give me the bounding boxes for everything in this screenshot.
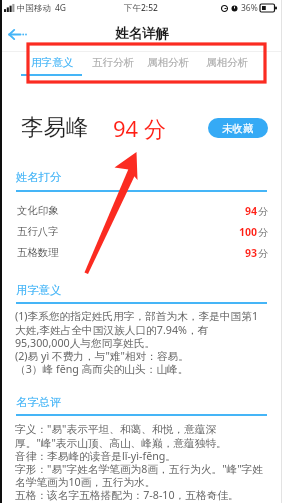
staticText: 4G xyxy=(55,2,67,14)
staticText: 五行八字 xyxy=(17,225,59,238)
staticText: 姓名详解 xyxy=(115,25,169,42)
button[interactable]: 属相分析 xyxy=(142,54,195,70)
staticText: 字义："易"表示平坦、和蔼、和悦，意蕴深 厚。"峰"表示山顶、高山、峰巅，意蕴独… xyxy=(15,422,263,502)
button[interactable]: 用字意义 xyxy=(26,54,79,70)
staticText: 36% xyxy=(241,2,258,14)
staticText: 未收藏 xyxy=(222,122,254,135)
staticText: 下午2:52 xyxy=(124,2,158,14)
staticText: 100 xyxy=(239,225,258,239)
button[interactable]: 属相分析 xyxy=(201,54,254,70)
staticText: 分 xyxy=(258,226,268,239)
staticText: 李易峰 xyxy=(21,113,89,141)
button[interactable]: 文化印象 xyxy=(0,200,282,221)
staticText: 文化印象 xyxy=(17,204,59,217)
button[interactable]: 五行分析 xyxy=(87,54,140,70)
staticText: 五行分析 xyxy=(92,56,135,69)
staticText: 93 xyxy=(245,246,258,260)
staticText: 94 xyxy=(245,204,258,218)
button[interactable]: 五行八字 xyxy=(0,221,282,242)
staticText: 分 xyxy=(258,205,268,218)
button[interactable]: Back xyxy=(4,19,30,49)
staticText: 姓名打分 xyxy=(16,170,62,184)
staticText: 属相分析 xyxy=(147,56,190,69)
button[interactable]: 五格数理 xyxy=(0,242,282,263)
staticText: 名字总评 xyxy=(16,395,62,409)
staticText: (1)李系您的指定姓氏用字，部首为木，李是中国第1 大姓,李姓占全中国汉族人口的… xyxy=(15,309,259,376)
staticText: 用字意义 xyxy=(31,56,74,69)
staticText: 用字意义 xyxy=(16,283,62,297)
staticText: 五格数理 xyxy=(17,246,59,259)
staticText: 属相分析 xyxy=(206,56,249,69)
staticText: 中国移动 xyxy=(17,3,51,14)
staticText: 94 分 xyxy=(113,113,166,141)
button[interactable]: 未收藏 xyxy=(208,118,268,138)
staticText: 分 xyxy=(258,247,268,260)
